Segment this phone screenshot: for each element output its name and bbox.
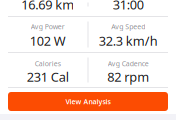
- staticText: Avg Speed: [111, 22, 145, 31]
- staticText: 82 rpm: [107, 68, 149, 85]
- button[interactable]: View Analysis: [8, 92, 168, 111]
- staticText: 16.69 km: [21, 0, 74, 13]
- staticText: 231 Cal: [27, 68, 69, 85]
- staticText: 32.3 km/h: [99, 32, 158, 49]
- staticText: Avg Power: [31, 22, 65, 31]
- staticText: 102 W: [30, 32, 66, 49]
- staticText: Calories: [35, 59, 61, 68]
- staticText: Avg Cadence: [108, 59, 149, 68]
- staticText: 31:00: [113, 0, 144, 13]
- staticText: View Analysis: [65, 97, 110, 106]
